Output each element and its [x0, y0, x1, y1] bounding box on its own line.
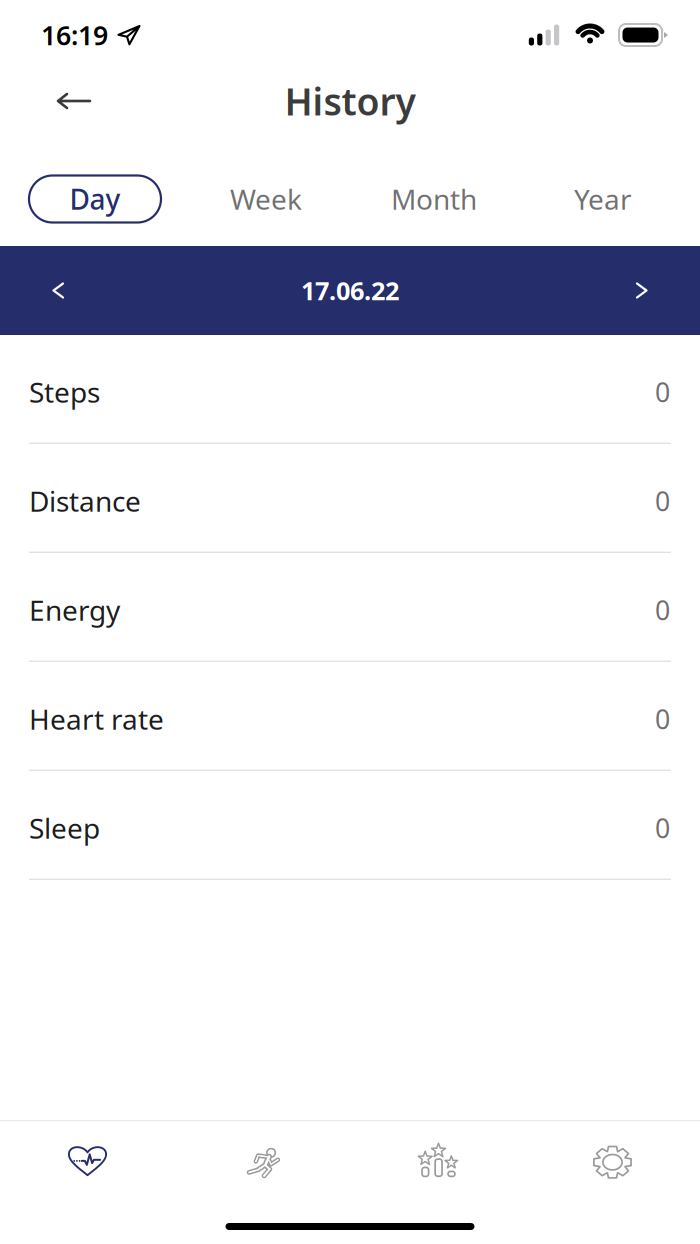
button[interactable]: Year	[538, 172, 668, 226]
staticText: 0	[655, 374, 670, 409]
button[interactable]: Week	[196, 172, 336, 226]
button[interactable]: Back	[56, 79, 100, 123]
button[interactable]: Activity	[175, 1133, 350, 1193]
button[interactable]: Day	[29, 175, 161, 222]
button[interactable]: Health	[0, 1133, 175, 1193]
staticText: Week	[230, 180, 302, 218]
staticText: Heart rate	[29, 700, 164, 737]
button[interactable]: Month	[359, 172, 509, 226]
staticText: History	[284, 76, 415, 126]
staticText: 0	[655, 701, 670, 736]
staticText: 17.06.22	[301, 274, 399, 307]
button[interactable]: Steps	[0, 335, 700, 444]
staticText: Year	[574, 180, 632, 218]
staticText: Month	[391, 180, 477, 218]
button[interactable]: Achievements	[350, 1133, 525, 1193]
staticText: Distance	[29, 482, 141, 519]
staticText: 16:19	[41, 17, 108, 53]
staticText: 0	[655, 483, 670, 518]
button[interactable]: Previous day	[28, 260, 88, 320]
button[interactable]: Heart rate	[0, 662, 700, 771]
button[interactable]: Distance	[0, 444, 700, 553]
staticText: 0	[655, 810, 670, 845]
staticText: Energy	[29, 591, 120, 628]
staticText: 0	[655, 592, 670, 627]
button[interactable]: Energy	[0, 553, 700, 662]
staticText: Sleep	[29, 809, 100, 846]
button[interactable]: Next day	[612, 260, 672, 320]
button[interactable]: Sleep	[0, 771, 700, 880]
staticText: Steps	[29, 373, 100, 410]
staticText: Day	[69, 180, 120, 218]
button[interactable]: Settings	[525, 1133, 700, 1193]
